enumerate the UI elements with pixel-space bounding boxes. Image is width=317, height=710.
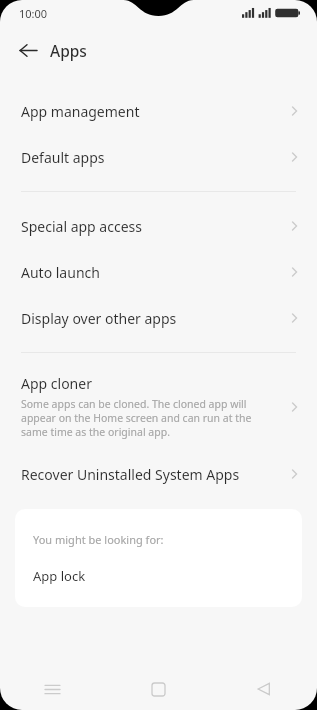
button[interactable]: Display over other apps bbox=[0, 295, 317, 341]
button[interactable]: App cloner bbox=[0, 362, 317, 451]
staticText: Recover Uninstalled System Apps bbox=[21, 465, 240, 484]
staticText: Auto launch bbox=[21, 263, 100, 282]
button[interactable]: Back bbox=[12, 34, 44, 66]
staticText: Special app access bbox=[21, 217, 142, 236]
staticText: App lock bbox=[33, 567, 86, 585]
staticText: 10:00 bbox=[19, 6, 48, 21]
staticText: App cloner bbox=[21, 374, 92, 393]
button[interactable]: App management bbox=[0, 88, 317, 134]
staticText: Display over other apps bbox=[21, 309, 177, 328]
staticText: Apps bbox=[50, 40, 87, 61]
staticText: Some apps can be cloned. The cloned app … bbox=[21, 397, 277, 439]
button[interactable]: Recents bbox=[0, 668, 105, 710]
staticText: App management bbox=[21, 102, 140, 121]
button[interactable]: Back bbox=[211, 668, 317, 710]
staticText: You might be looking for: bbox=[33, 532, 164, 547]
button[interactable]: Recover Uninstalled System Apps bbox=[0, 451, 317, 497]
button[interactable]: Auto launch bbox=[0, 249, 317, 295]
staticText: Default apps bbox=[21, 148, 105, 167]
button[interactable]: Default apps bbox=[0, 134, 317, 180]
button[interactable]: You might be looking for: bbox=[15, 509, 302, 607]
button[interactable]: Home bbox=[105, 668, 211, 710]
button[interactable]: Special app access bbox=[0, 203, 317, 249]
